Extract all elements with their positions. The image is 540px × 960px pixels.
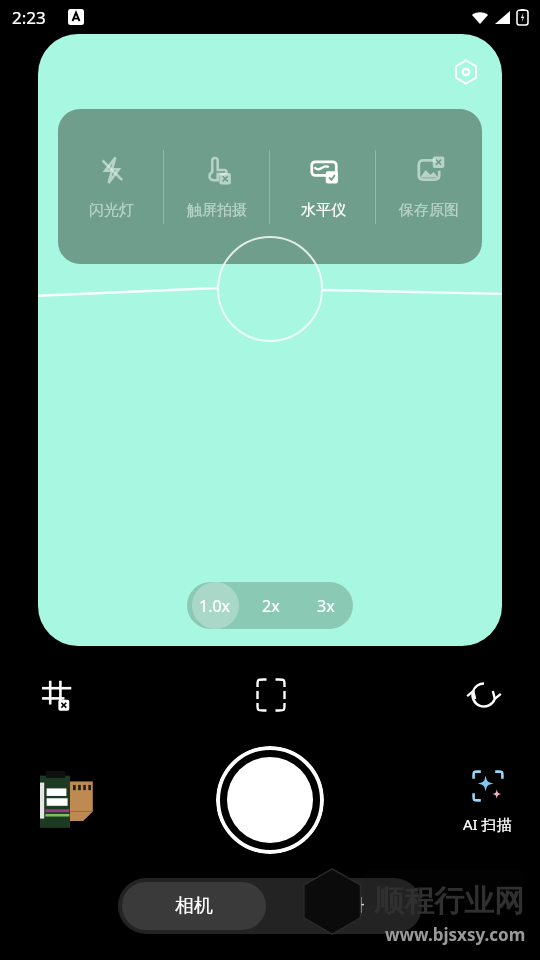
staticText: 触屏拍摄 — [187, 201, 247, 220]
button[interactable]: 1.0x — [187, 582, 243, 629]
staticText: 顺程行业网 — [374, 882, 524, 920]
staticText: 2:23 — [12, 6, 46, 29]
button[interactable]: Switch camera — [347, 664, 500, 726]
button[interactable]: 闪光灯 — [58, 109, 164, 264]
staticText: www.bjsxsy.com — [385, 923, 526, 946]
staticText: 1.0x — [199, 595, 231, 617]
staticText: 水平仪 — [301, 201, 346, 220]
staticText: 保存原图 — [399, 201, 459, 220]
button[interactable]: 3x — [298, 582, 353, 629]
button[interactable]: Grid off — [40, 664, 194, 726]
staticText: AI 扫描 — [463, 814, 512, 834]
staticText: 2x — [262, 595, 280, 617]
staticText: 3x — [317, 595, 335, 617]
button[interactable]: 相册 — [274, 882, 418, 930]
button[interactable]: 2x — [243, 582, 298, 629]
button[interactable]: 相机 — [122, 882, 266, 930]
button[interactable]: 水平仪 — [270, 109, 376, 264]
button[interactable]: AI 扫描 — [463, 766, 512, 834]
button[interactable]: Settings — [450, 56, 482, 88]
staticText: 闪光灯 — [89, 201, 134, 220]
button[interactable]: Shutter — [216, 746, 324, 854]
button[interactable]: 触屏拍摄 — [164, 109, 270, 264]
staticText: 相册 — [327, 894, 365, 918]
button[interactable]: Aspect ratio 3:4 — [194, 664, 347, 726]
button[interactable]: Gallery — [34, 771, 94, 829]
staticText: 相机 — [175, 894, 213, 918]
button[interactable]: 保存原图 — [376, 109, 482, 264]
